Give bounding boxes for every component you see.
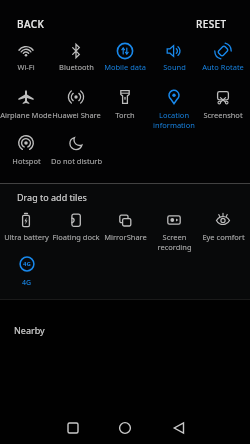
- staticText: Screenshot: [203, 110, 243, 120]
- staticText: Floating dock: [52, 232, 100, 242]
- staticText: BACK: [17, 17, 45, 31]
- staticText: Nearby: [14, 324, 45, 336]
- staticText: 4G: [22, 278, 32, 288]
- staticText: Location information: [153, 110, 195, 130]
- staticText: Drag to add tiles: [17, 191, 87, 203]
- staticText: Torch: [115, 110, 135, 120]
- staticText: Screen recording: [157, 232, 192, 252]
- staticText: Eye comfort: [202, 232, 245, 242]
- staticText: RESET: [196, 17, 227, 31]
- staticText: Ultra battery: [4, 232, 49, 242]
- staticText: Wi-Fi: [17, 62, 35, 72]
- staticText: Auto Rotate: [202, 62, 244, 72]
- staticText: 4G: [23, 260, 31, 268]
- staticText: Airplane Mode: [0, 110, 52, 120]
- staticText: Hotspot: [12, 156, 41, 166]
- staticText: MirrorShare: [104, 232, 147, 242]
- staticText: Bluetooth: [59, 62, 94, 72]
- staticText: Do not disturb: [51, 156, 102, 166]
- staticText: Mobile data: [104, 62, 146, 72]
- staticText: Huawei Share: [52, 110, 101, 120]
- staticText: Sound: [163, 62, 186, 72]
